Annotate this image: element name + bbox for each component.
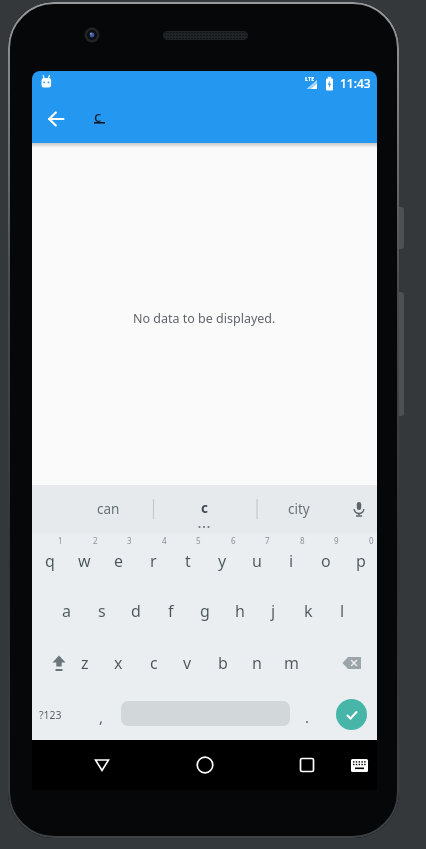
staticText: c <box>150 652 158 674</box>
button[interactable]: b <box>205 637 240 688</box>
staticText: 4 <box>162 535 167 546</box>
button[interactable]: d <box>118 585 153 636</box>
staticText: h <box>235 600 245 622</box>
button[interactable]: w <box>67 535 102 586</box>
button[interactable]: s <box>84 585 119 636</box>
staticText: u <box>252 550 262 572</box>
staticText: 5 <box>196 535 201 546</box>
button[interactable]: i <box>274 535 309 586</box>
staticText: 0 <box>369 535 374 546</box>
button[interactable] <box>40 103 72 135</box>
staticText: p <box>356 550 366 572</box>
staticText: 6 <box>231 535 236 546</box>
staticText: j <box>271 600 276 622</box>
staticText: 3 <box>127 535 132 546</box>
button[interactable]: city <box>259 485 339 533</box>
staticText: x <box>114 652 123 674</box>
staticText: r <box>150 550 157 572</box>
staticText: f <box>168 600 174 622</box>
button[interactable]: t <box>170 535 205 586</box>
staticText: t <box>185 550 191 572</box>
button[interactable]: l <box>325 585 360 636</box>
staticText: i <box>289 550 294 572</box>
button[interactable]: j <box>256 585 291 636</box>
button[interactable]: c <box>88 103 108 129</box>
button[interactable]: . <box>292 691 322 742</box>
button[interactable] <box>181 740 229 790</box>
button[interactable] <box>339 740 377 790</box>
staticText: . <box>305 707 310 727</box>
button[interactable] <box>326 637 377 688</box>
button[interactable]: q <box>32 535 67 586</box>
button[interactable]: p <box>343 535 377 586</box>
staticText: can <box>97 500 120 518</box>
staticText: w <box>78 550 91 572</box>
button[interactable]: x <box>101 637 136 688</box>
staticText: z <box>81 652 89 674</box>
button[interactable]: , <box>86 691 116 742</box>
button[interactable]: r <box>136 535 171 586</box>
staticText: b <box>218 652 228 674</box>
button[interactable]: can <box>63 485 153 533</box>
button[interactable]: c <box>136 637 171 688</box>
staticText: m <box>284 652 299 674</box>
button[interactable]: ?123 <box>32 689 69 740</box>
staticText: o <box>321 550 331 572</box>
button[interactable]: m <box>274 637 309 688</box>
staticText: No data to be displayed. <box>133 310 276 327</box>
button[interactable]: h <box>222 585 257 636</box>
staticText: n <box>252 652 262 674</box>
staticText: , <box>99 707 104 727</box>
button[interactable] <box>283 740 331 790</box>
staticText: ?123 <box>39 708 62 722</box>
staticText: 7 <box>265 535 270 546</box>
button[interactable]: a <box>49 585 84 636</box>
staticText: 2 <box>93 535 98 546</box>
staticText: y <box>218 550 227 572</box>
button[interactable] <box>341 485 377 533</box>
staticText: k <box>304 600 313 622</box>
button[interactable]: e <box>101 535 136 586</box>
button[interactable]: f <box>153 585 188 636</box>
button[interactable]: z <box>67 637 102 688</box>
staticText: q <box>45 550 55 572</box>
button[interactable]: o <box>308 535 343 586</box>
staticText: l <box>340 600 345 622</box>
staticText: LTE <box>305 75 315 82</box>
button[interactable]: n <box>239 637 274 688</box>
staticText: city <box>288 500 310 518</box>
staticText: v <box>183 652 192 674</box>
staticText: d <box>131 600 141 622</box>
staticText: 9 <box>334 535 339 546</box>
staticText: e <box>114 550 124 572</box>
button[interactable]: c <box>159 485 249 531</box>
staticText: s <box>98 600 106 622</box>
button[interactable] <box>78 740 126 790</box>
button[interactable]: y <box>205 535 240 586</box>
staticText: 1 <box>58 535 63 546</box>
button[interactable]: g <box>187 585 222 636</box>
button[interactable] <box>33 637 84 688</box>
staticText: c <box>94 106 102 126</box>
staticText: c <box>201 499 208 517</box>
staticText: 11:43 <box>340 75 371 91</box>
button[interactable] <box>336 699 367 730</box>
staticText: 8 <box>300 535 305 546</box>
staticText: g <box>200 600 210 622</box>
button[interactable]: v <box>170 637 205 688</box>
button[interactable]: u <box>239 535 274 586</box>
button[interactable]: k <box>291 585 326 636</box>
staticText: a <box>62 600 71 622</box>
